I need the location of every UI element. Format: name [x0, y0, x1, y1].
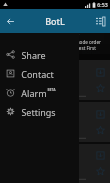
staticText: BETA — [47, 87, 56, 92]
staticText: Contact — [21, 68, 54, 80]
staticText: Bonus — [82, 48, 100, 56]
button[interactable]: Sort order — [90, 11, 110, 31]
button[interactable]: Alarm — [0, 83, 79, 102]
button[interactable]: Settings — [0, 102, 79, 121]
staticText: BotL — [45, 15, 65, 27]
button[interactable]: Contact — [0, 64, 79, 83]
button[interactable] — [78, 102, 110, 142]
staticText: Settings — [21, 106, 56, 118]
staticText: between Newest First and Oldest First — [14, 45, 96, 51]
button[interactable] — [78, 60, 110, 100]
button[interactable] — [78, 144, 110, 183]
staticText: Alarm — [21, 87, 47, 99]
staticText: Did you know? — [29, 27, 81, 37]
button[interactable]: Share — [0, 45, 79, 64]
staticText: 6:53 — [97, 1, 108, 8]
staticText: Clicking here will toggle the episode or… — [10, 39, 101, 45]
staticText: Share — [21, 49, 46, 61]
button[interactable]: Navigate up — [0, 11, 20, 31]
